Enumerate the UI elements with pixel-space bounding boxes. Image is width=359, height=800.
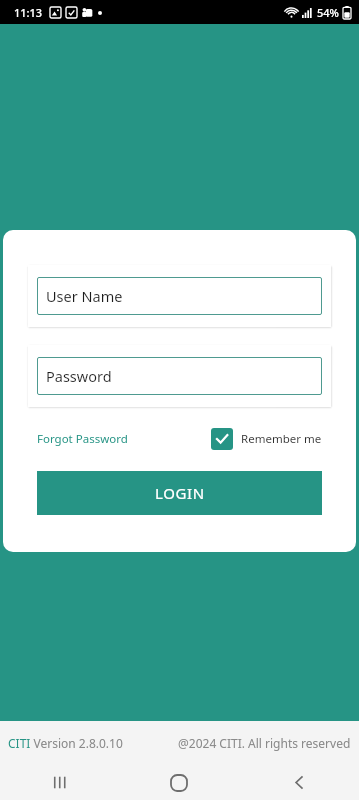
button[interactable]: Recent apps: [0, 765, 119, 800]
button[interactable]: Home: [119, 765, 239, 800]
staticText: Password: [46, 366, 112, 386]
staticText: Remember me: [241, 431, 322, 447]
staticText: CITI Version 2.8.0.10: [8, 735, 123, 751]
staticText: Forgot Password: [37, 431, 128, 447]
staticText: LOGIN: [155, 483, 205, 503]
staticText: 11:13: [14, 5, 43, 20]
staticText: @2024 CITI. All rights reserved: [178, 735, 351, 751]
button[interactable]: Remember me: [211, 426, 322, 452]
button[interactable]: Back: [239, 765, 359, 800]
button[interactable]: User Name: [37, 277, 322, 315]
button[interactable]: LOGIN: [37, 471, 322, 515]
staticText: User Name: [46, 286, 123, 306]
button[interactable]: Password: [37, 357, 322, 395]
button[interactable]: Forgot Password: [37, 427, 128, 451]
staticText: 54%: [317, 5, 339, 20]
